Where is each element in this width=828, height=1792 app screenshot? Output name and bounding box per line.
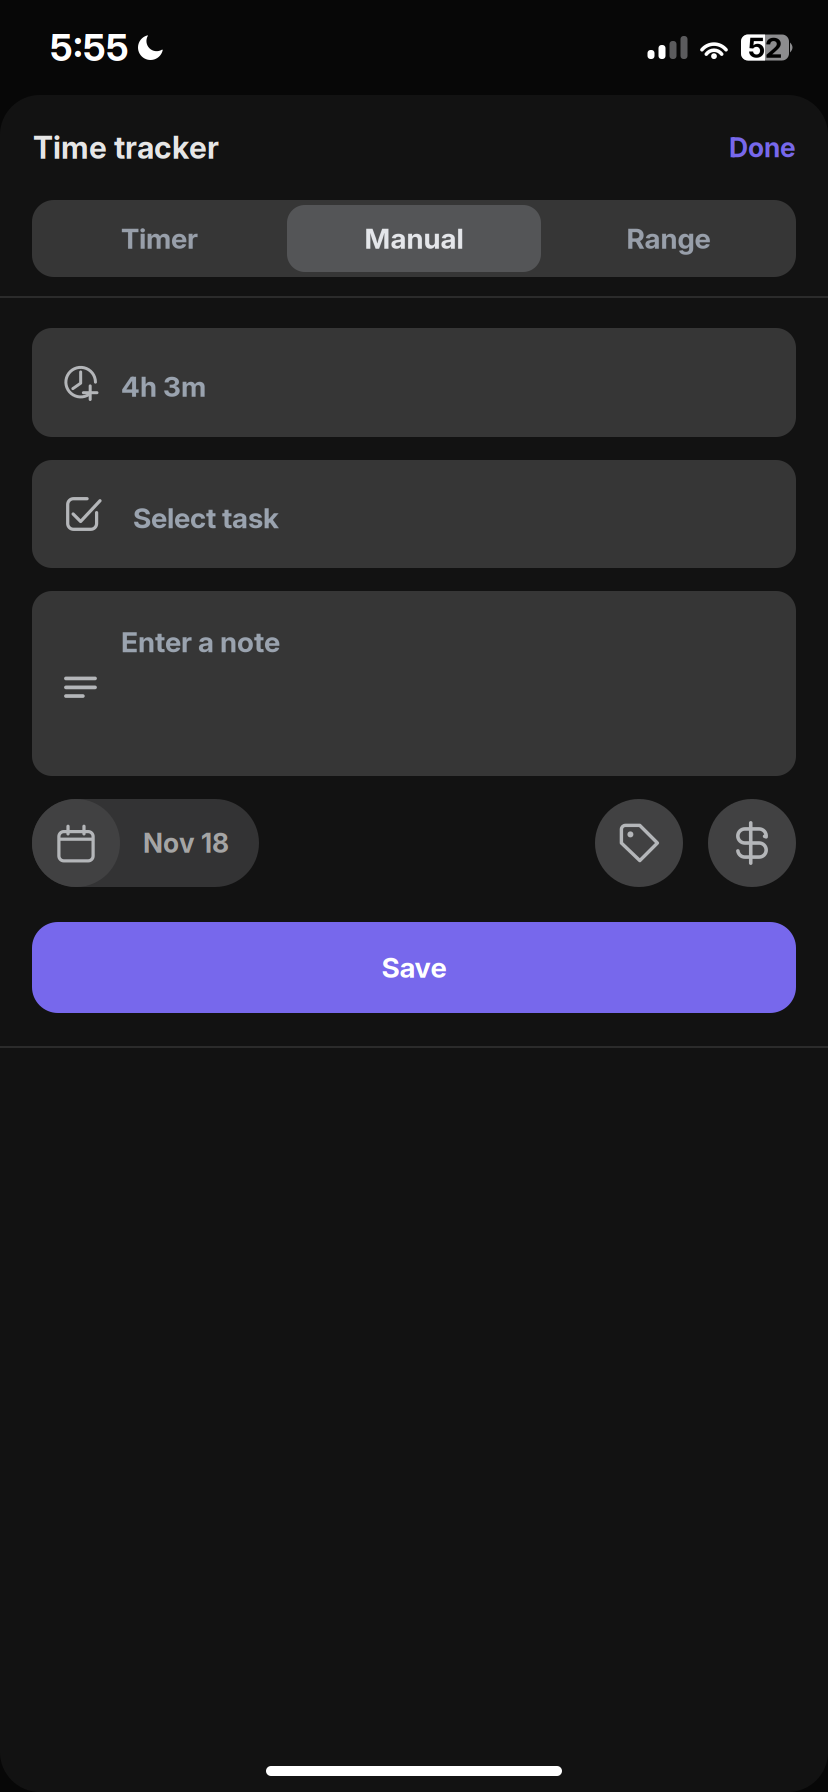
staticText: Time tracker bbox=[33, 129, 219, 166]
staticText: Range bbox=[626, 222, 710, 255]
button[interactable]: Range bbox=[541, 200, 796, 277]
button[interactable]: Select task bbox=[32, 460, 796, 568]
staticText: Done bbox=[729, 131, 796, 164]
staticText: 4h 3m bbox=[121, 369, 206, 403]
staticText: 52 bbox=[748, 31, 782, 64]
button[interactable]: Manual bbox=[287, 200, 541, 277]
button[interactable]: Timer bbox=[32, 200, 287, 277]
staticText: Enter a note bbox=[121, 625, 280, 659]
button[interactable]: Nov 18 bbox=[32, 799, 259, 887]
staticText: Select task bbox=[133, 501, 279, 535]
button[interactable]: 4h 3m bbox=[32, 328, 796, 437]
button[interactable]: Done bbox=[729, 131, 796, 164]
staticText: Manual bbox=[364, 222, 463, 255]
button[interactable]: Tags bbox=[595, 799, 683, 887]
staticText: Timer bbox=[121, 222, 198, 255]
button[interactable]: Save bbox=[32, 922, 796, 1013]
staticText: Nov 18 bbox=[143, 827, 229, 859]
button[interactable]: Billable bbox=[708, 799, 796, 887]
button[interactable]: Enter a note bbox=[32, 591, 796, 776]
staticText: 5:55 bbox=[50, 25, 129, 70]
staticText: Save bbox=[381, 951, 446, 984]
